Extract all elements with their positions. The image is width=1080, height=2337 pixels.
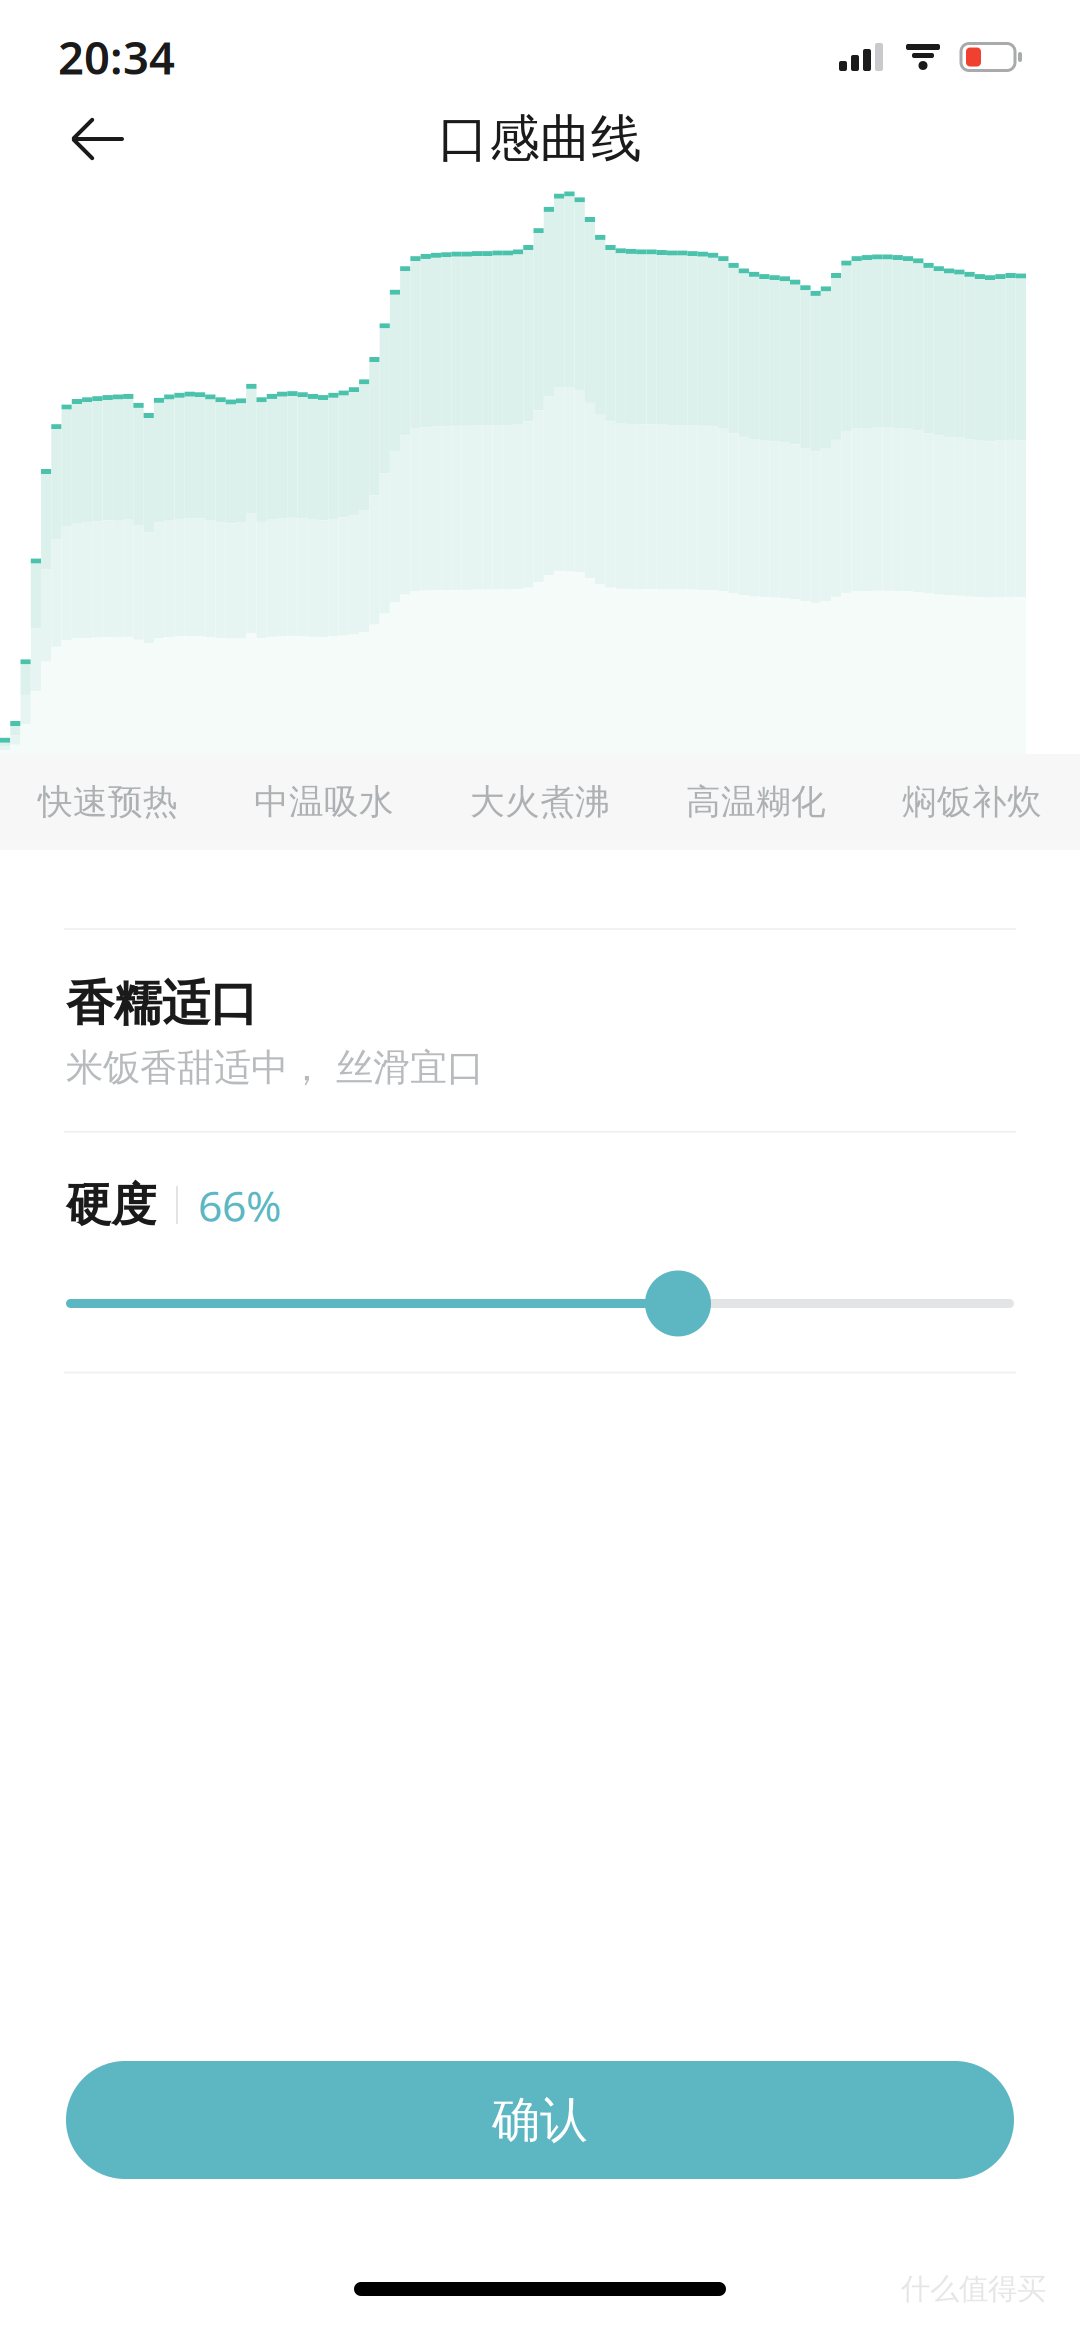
staticText: 大火煮沸 [470, 781, 610, 823]
staticText: 66% [198, 1177, 281, 1233]
staticText: 高温糊化 [686, 781, 826, 823]
staticText: 什么值得买 [901, 2271, 1046, 2307]
staticText: 米饭香甜适中， 丝滑宜口 [66, 1045, 484, 1091]
staticText: 20:34 [58, 27, 175, 87]
staticText: 焖饭补炊 [902, 781, 1042, 823]
staticText: 确认 [492, 2090, 588, 2149]
staticText: 快速预热 [38, 781, 178, 823]
staticText: 香糯适口 [66, 974, 258, 1033]
staticText: 口感曲线 [438, 108, 642, 170]
staticText: 硬度 [66, 1177, 156, 1233]
staticText: 中温吸水 [254, 781, 394, 823]
button[interactable]: 返回 [48, 99, 138, 179]
button[interactable]: 确认 [66, 2061, 1014, 2179]
